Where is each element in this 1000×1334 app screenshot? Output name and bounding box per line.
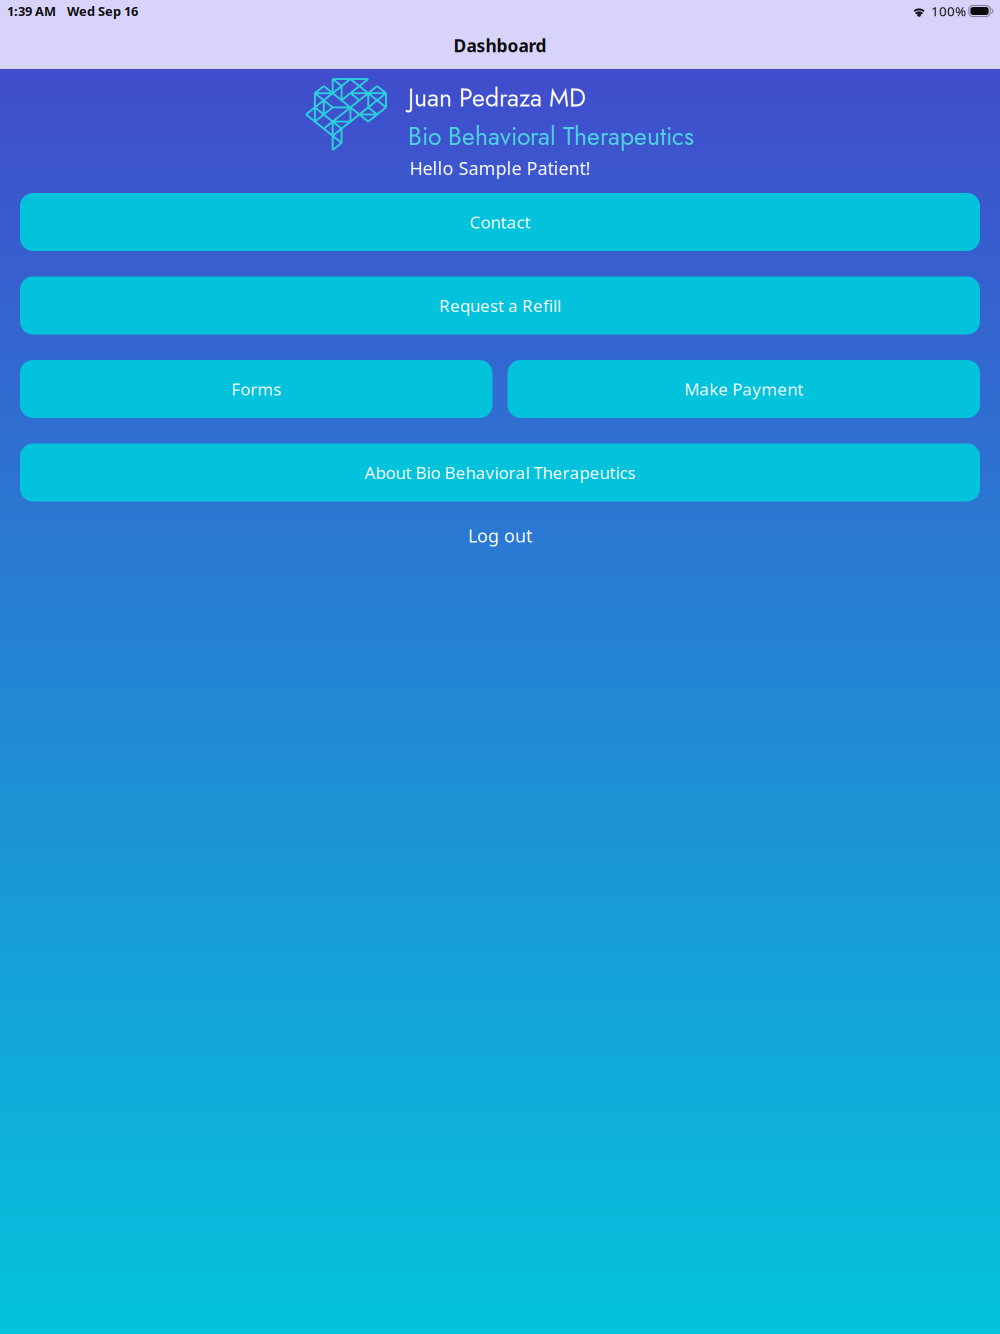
staticText: 100% [931,2,966,20]
staticText: Contact [469,210,530,234]
staticText: About Bio Behavioral Therapeutics [364,461,635,484]
button[interactable]: Make Payment [507,360,980,418]
staticText: Log out [468,523,532,548]
staticText: Juan Pedraza MD [408,80,586,116]
staticText: Wed Sep 16 [67,2,138,20]
button[interactable]: About Bio Behavioral Therapeutics [20,443,980,501]
staticText: Bio Behavioral Therapeutics [408,119,694,154]
button[interactable]: Log out [444,501,556,560]
button[interactable]: Forms [20,360,492,418]
staticText: Make Payment [684,377,803,401]
staticText: Forms [231,377,281,401]
button[interactable]: Request a Refill [20,276,980,334]
staticText: Hello Sample Patient! [409,156,590,180]
button[interactable]: Contact [20,193,980,251]
staticText: 1:39 AM [7,2,56,20]
staticText: Request a Refill [439,294,561,317]
staticText: Dashboard [453,34,546,57]
